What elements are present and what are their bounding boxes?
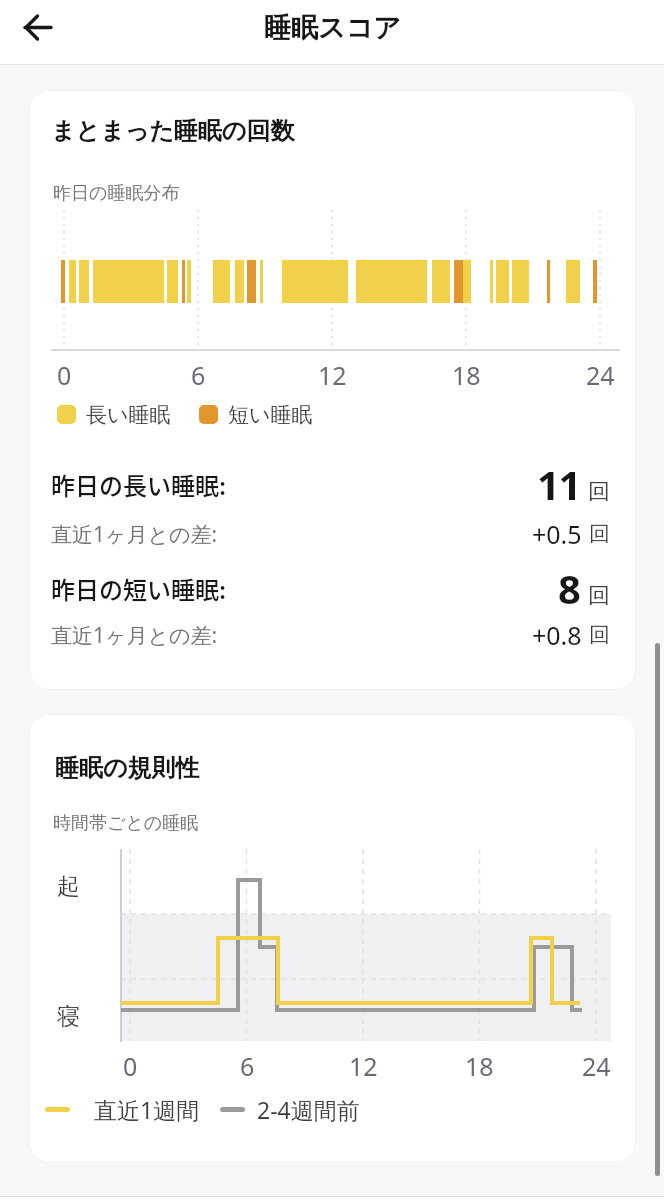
staticText: まとまった睡眠の回数 xyxy=(51,116,295,146)
staticText: 昨日の長い睡眠: xyxy=(51,467,227,502)
staticText: 時間帯ごとの睡眠 xyxy=(53,812,199,835)
staticText: +0.8 xyxy=(532,618,582,652)
staticText: 睡眠スコア xyxy=(264,11,401,45)
staticText: 昨日の睡眠分布 xyxy=(53,182,180,205)
staticText: 0 xyxy=(123,1049,138,1083)
staticText: 6 xyxy=(240,1049,255,1083)
staticText: 昨日の短い睡眠: xyxy=(51,571,227,606)
staticText: 11 xyxy=(537,457,580,511)
staticText: 回 xyxy=(589,622,610,648)
staticText: 24 xyxy=(582,1049,611,1083)
staticText: 24 xyxy=(586,358,615,392)
staticText: 18 xyxy=(452,358,481,392)
staticText: 8 xyxy=(558,561,580,615)
staticText: 長い睡眠 xyxy=(86,402,171,428)
staticText: 回 xyxy=(588,582,610,610)
staticText: 睡眠の規則性 xyxy=(55,753,200,783)
staticText: 18 xyxy=(465,1049,494,1083)
staticText: 2-4週間前 xyxy=(257,1094,360,1125)
staticText: 直近1ヶ月との差: xyxy=(51,621,218,650)
staticText: 0 xyxy=(57,358,72,392)
staticText: 起 xyxy=(57,872,80,901)
staticText: +0.5 xyxy=(532,517,582,551)
staticText: 12 xyxy=(349,1049,378,1083)
staticText: 回 xyxy=(588,478,610,506)
staticText: 直近1週間 xyxy=(94,1094,200,1125)
staticText: 短い睡眠 xyxy=(228,402,313,428)
staticText: 6 xyxy=(191,358,206,392)
staticText: 12 xyxy=(318,358,347,392)
staticText: 直近1ヶ月との差: xyxy=(51,520,218,549)
staticText: 回 xyxy=(589,521,610,547)
button[interactable] xyxy=(14,4,62,52)
staticText: 寝 xyxy=(57,1002,80,1031)
